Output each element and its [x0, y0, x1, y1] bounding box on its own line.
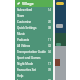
staticText: Store: [17, 14, 25, 18]
button[interactable]: Podcasts: [15, 37, 53, 43]
staticText: Languages: [17, 79, 32, 80]
button[interactable]: Sport and Games: [15, 55, 53, 61]
staticText: Music: [17, 32, 25, 36]
staticText: Transportation Guide: [17, 50, 46, 54]
button[interactable]: Help: [15, 73, 53, 79]
staticText: 08: [48, 26, 51, 30]
button[interactable]: Night Mode: [15, 61, 53, 67]
button[interactable]: Favourites Set: [15, 67, 53, 73]
staticText: 17: [48, 62, 51, 66]
staticText: 32: [48, 44, 51, 48]
button[interactable]: Music: [15, 31, 53, 37]
button[interactable]: Quick Settings: [15, 25, 53, 31]
staticText: 04: [48, 50, 51, 54]
staticText: Quick Settings: [17, 26, 37, 30]
staticText: Podcasts: [17, 38, 30, 42]
staticText: 20: [48, 20, 51, 24]
staticText: Night Mode: [17, 62, 34, 66]
staticText: Sport and Games: [17, 56, 41, 60]
button[interactable]: All Videos: [15, 43, 53, 49]
staticText: All Videos: [17, 44, 31, 48]
button[interactable]: Logo: [15, 0, 53, 7]
button[interactable]: Customise: [15, 19, 53, 25]
staticText: Subscribed: [17, 8, 33, 12]
staticText: Help: [17, 74, 24, 78]
button[interactable]: Subscribed: [15, 7, 53, 13]
staticText: 14: [48, 8, 51, 12]
button[interactable]: Languages: [15, 79, 53, 80]
staticText: Village: [22, 1, 34, 6]
staticText: 11: [48, 38, 51, 42]
staticText: 09: [48, 68, 51, 72]
staticText: Favourites Set: [17, 68, 37, 72]
button[interactable]: Store: [15, 13, 53, 19]
button[interactable]: Transportation Guide: [15, 49, 53, 55]
staticText: 06: [48, 79, 51, 80]
staticText: Customise: [17, 20, 32, 24]
other: Logo: [17, 2, 20, 5]
